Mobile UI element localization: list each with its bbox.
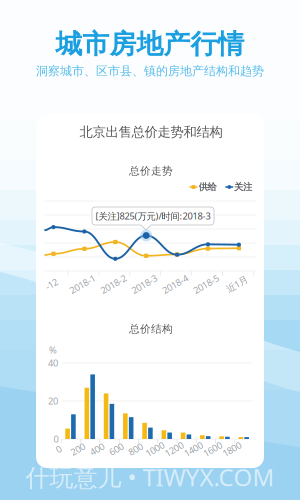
staticText: 1800 [222,443,242,455]
staticText: 1400 [183,443,203,455]
staticText: 2018-1 [68,278,96,290]
staticText: 0 [53,433,58,445]
staticText: 600 [109,443,124,455]
staticText: 1200 [164,443,184,455]
staticText: 总价走势 [129,164,173,177]
staticText: 供给 [198,181,216,193]
staticText: 关注 [234,181,252,193]
staticText: 800 [128,443,143,455]
staticText: 1600 [202,443,222,455]
staticText: 总价结构 [129,322,173,335]
staticText: 2018-2 [99,278,127,290]
staticText: 2018-4 [161,278,189,290]
staticText: 2018-5 [192,278,220,290]
staticText: 洞察城市、区市县、镇的房地产结构和趋势 [36,64,264,78]
staticText: 40 [48,357,58,369]
staticText: 20 [48,395,58,407]
staticText: 2018-3 [130,278,158,290]
staticText: 什玩意儿 • TIWYX.COM [25,461,274,493]
staticText: [关注]825(万元)/时间:2018-3 [95,210,210,222]
staticText: 城市房地产行情 [55,28,244,60]
staticText: 200 [70,443,85,455]
staticText: 近1月 [225,278,248,290]
staticText: % [49,344,57,356]
staticText: 北京出售总价走势和结构 [79,124,222,140]
staticText: -12 [45,278,58,290]
staticText: 400 [89,443,104,455]
staticText: 1000 [145,443,165,455]
staticText: 0 [56,443,61,455]
